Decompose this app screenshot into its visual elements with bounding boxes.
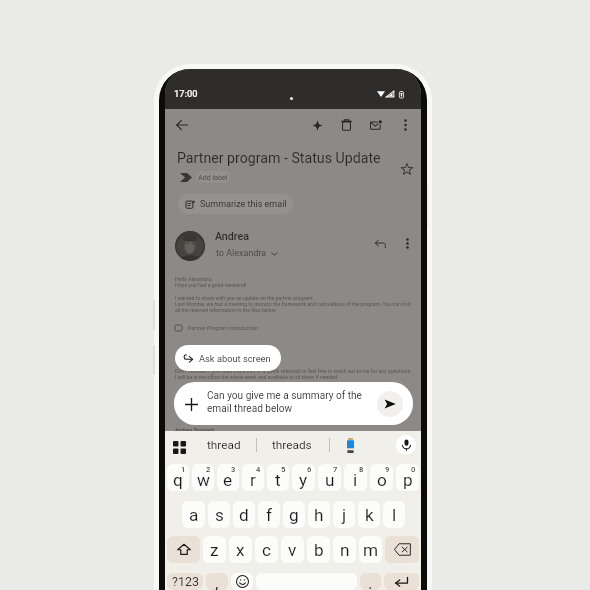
- button[interactable]: s: [208, 501, 230, 528]
- button[interactable]: Backspace: [385, 536, 419, 563]
- button[interactable]: z: [203, 536, 226, 563]
- staticText: v: [288, 540, 297, 560]
- staticText: u: [325, 470, 335, 490]
- staticText: h: [314, 505, 324, 525]
- staticText: 3: [231, 465, 236, 474]
- button[interactable]: w: [192, 464, 214, 491]
- button[interactable]: y: [292, 464, 315, 491]
- button[interactable]: f: [258, 501, 280, 528]
- button[interactable]: q: [167, 464, 189, 491]
- staticText: 5: [281, 465, 286, 474]
- staticText: r: [250, 470, 256, 490]
- staticText: b: [314, 540, 324, 560]
- button[interactable]: Summarize this email: [178, 194, 293, 214]
- staticText: ?123: [172, 574, 199, 589]
- button[interactable]: Star: [396, 158, 417, 179]
- button[interactable]: o: [370, 464, 393, 491]
- button[interactable]: n: [333, 536, 356, 563]
- staticText: y: [299, 470, 308, 490]
- button[interactable]: More options: [394, 114, 416, 136]
- button[interactable]: Ask about screen: [175, 345, 281, 371]
- staticText: q: [173, 470, 183, 490]
- staticText: 1: [181, 465, 186, 474]
- staticText: to Alexandra: [216, 248, 267, 259]
- staticText: l: [392, 505, 397, 525]
- button[interactable]: More options: [397, 233, 418, 254]
- staticText: d: [239, 505, 249, 525]
- button[interactable]: j: [333, 501, 355, 528]
- staticText: Last Monday, we had a meeting to discuss…: [175, 301, 411, 307]
- staticText: g: [289, 505, 299, 525]
- staticText: Andrea: [215, 230, 250, 243]
- staticText: x: [236, 540, 245, 560]
- button[interactable]: Add label: [196, 171, 229, 183]
- staticText: Don't hesitate if you need more info or …: [175, 368, 412, 374]
- staticText: I will be in the office the whole week a…: [175, 374, 339, 380]
- staticText: 0: [411, 465, 416, 474]
- button[interactable]: Emoji: [231, 573, 253, 590]
- button[interactable]: Reply: [370, 233, 391, 254]
- staticText: f: [266, 505, 272, 525]
- staticText: ,: [215, 573, 219, 590]
- staticText: all the relevant information in the file…: [175, 307, 277, 313]
- staticText: m: [363, 540, 379, 560]
- button[interactable]: v: [281, 536, 304, 563]
- button[interactable]: d: [233, 501, 255, 528]
- button[interactable]: c: [255, 536, 278, 563]
- button[interactable]: Voice input: [396, 435, 416, 455]
- button[interactable]: Keyboard toolbar: [168, 436, 190, 458]
- staticText: 2: [206, 465, 211, 474]
- staticText: Can you give me a summary of the email t…: [207, 390, 365, 414]
- staticText: i: [353, 470, 358, 490]
- staticText: Andrea Stoniard: [175, 427, 214, 433]
- staticText: thread: [207, 438, 241, 452]
- button[interactable]: g: [283, 501, 305, 528]
- staticText: 17:00: [174, 88, 198, 99]
- button[interactable]: Can you give me a summary of the email t…: [174, 382, 413, 425]
- button[interactable]: Magic compose: [306, 114, 328, 136]
- button[interactable]: Enter: [384, 573, 419, 590]
- staticText: c: [262, 540, 271, 560]
- button[interactable]: ?123: [167, 573, 203, 590]
- staticText: z: [210, 540, 219, 560]
- staticText: I wanted to share with you an update on …: [175, 295, 314, 301]
- button[interactable]: h: [308, 501, 330, 528]
- staticText: t: [275, 470, 281, 490]
- staticText: p: [403, 470, 413, 490]
- staticText: Partner program - Status Update: [177, 150, 397, 167]
- button[interactable]: k: [358, 501, 380, 528]
- staticText: e: [223, 470, 233, 490]
- staticText: threads: [272, 438, 312, 452]
- button[interactable]: Delete: [335, 114, 357, 136]
- staticText: w: [197, 470, 210, 490]
- staticText: Hello Alexandra,: [175, 276, 212, 282]
- button[interactable]: m: [359, 536, 382, 563]
- button[interactable]: i: [344, 464, 367, 491]
- button[interactable]: ,: [206, 573, 228, 590]
- button[interactable]: r: [242, 464, 264, 491]
- button[interactable]: Send: [377, 391, 403, 417]
- button[interactable]: a: [182, 501, 205, 528]
- staticText: 9: [385, 465, 390, 474]
- button[interactable]: Mark as unread: [365, 114, 387, 136]
- button[interactable]: p: [396, 464, 419, 491]
- button[interactable]: u: [318, 464, 341, 491]
- button[interactable]: e: [217, 464, 239, 491]
- button[interactable]: Shift: [167, 536, 200, 563]
- staticText: j: [342, 505, 347, 525]
- staticText: .: [368, 573, 373, 590]
- staticText: 4: [256, 465, 261, 474]
- button[interactable]: x: [229, 536, 252, 563]
- staticText: 7: [333, 465, 338, 474]
- staticText: Partner Program Introduction: [188, 325, 259, 331]
- button[interactable]: b: [307, 536, 330, 563]
- button[interactable]: Back: [171, 114, 193, 136]
- staticText: Ask about screen: [199, 353, 271, 364]
- staticText: Summarize this email: [200, 199, 287, 210]
- staticText: Hope you had a good weekend!: [175, 282, 247, 288]
- button[interactable]: l: [383, 501, 405, 528]
- button[interactable]: t: [267, 464, 289, 491]
- staticText: o: [377, 470, 387, 490]
- button[interactable]: .: [360, 573, 381, 590]
